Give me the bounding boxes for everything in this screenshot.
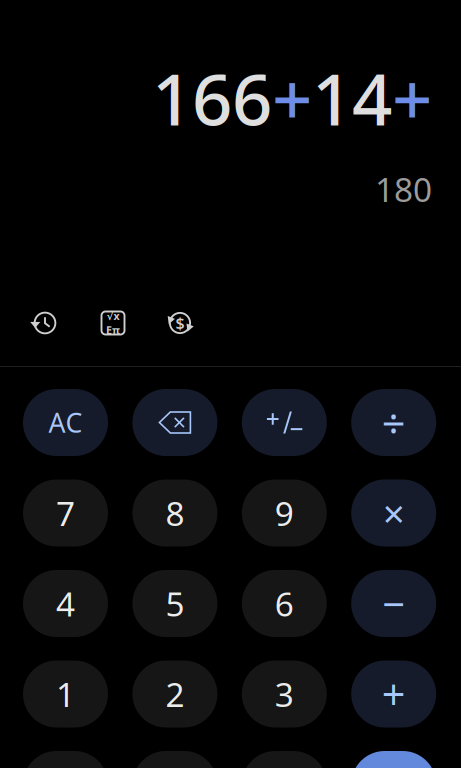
button[interactable]: 6 [242, 570, 327, 637]
button[interactable]: History [22, 300, 67, 345]
staticText: AC [48, 405, 82, 440]
staticText: 14 [312, 51, 392, 145]
staticText: 8 [165, 491, 184, 535]
button[interactable]: 7 [23, 479, 108, 546]
staticText: 5 [165, 581, 184, 626]
button[interactable]: 9 [242, 479, 327, 546]
staticText: 7 [56, 491, 75, 535]
staticText: √x [106, 309, 119, 323]
button[interactable]: Scientific mode [90, 300, 135, 345]
staticText: 166 [152, 51, 272, 145]
staticText: + [392, 51, 432, 145]
button[interactable]: AC [23, 389, 108, 456]
button[interactable]: 2 [132, 660, 217, 727]
staticText: × [383, 487, 405, 539]
button[interactable]: ÷ [351, 389, 436, 456]
staticText: 4 [56, 581, 75, 626]
staticText: $ [175, 312, 184, 334]
staticText: 3 [275, 672, 294, 716]
staticText: 1 [56, 672, 75, 716]
staticText: + [382, 667, 406, 721]
staticText: − [382, 577, 405, 630]
staticText: 2 [165, 672, 184, 716]
button[interactable]: . [242, 751, 327, 768]
button[interactable]: × [351, 479, 436, 546]
staticText: 9 [275, 491, 294, 535]
button[interactable]: Backspace [132, 389, 217, 456]
button[interactable]: + [351, 660, 436, 727]
button[interactable]: % [23, 751, 108, 768]
button[interactable]: 1 [23, 660, 108, 727]
button[interactable]: 8 [132, 479, 217, 546]
button[interactable]: 3 [242, 660, 327, 727]
button[interactable]: Toggle sign [242, 389, 327, 456]
button[interactable]: Currency converter [157, 300, 202, 345]
staticText: 6 [275, 581, 294, 626]
staticText: Eπ [106, 323, 120, 337]
staticText: ÷ [382, 395, 406, 450]
button[interactable]: 5 [132, 570, 217, 637]
button[interactable]: 0 [132, 751, 217, 768]
staticText: + [272, 51, 312, 145]
button[interactable]: 4 [23, 570, 108, 637]
button[interactable]: = [351, 751, 436, 768]
staticText: 180 [375, 167, 432, 211]
button[interactable]: − [351, 570, 436, 637]
